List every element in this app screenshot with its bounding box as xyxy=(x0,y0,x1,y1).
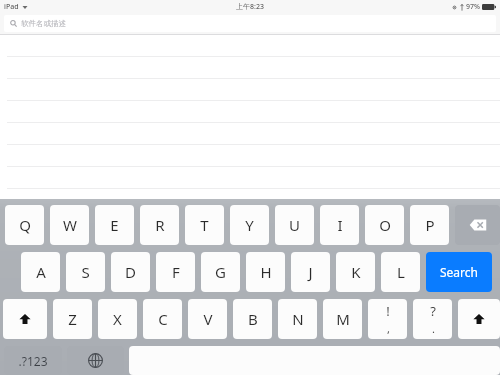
button[interactable]: J xyxy=(291,252,330,292)
button[interactable]: L xyxy=(381,252,420,292)
staticText: .?123 xyxy=(18,353,48,369)
staticText: A xyxy=(36,262,46,282)
staticText: Search xyxy=(440,264,478,280)
staticText: O xyxy=(379,215,391,235)
button[interactable]: Shift xyxy=(3,299,47,339)
button[interactable]: ! xyxy=(368,299,407,339)
button[interactable]: U xyxy=(275,205,314,245)
button[interactable]: S xyxy=(66,252,105,292)
staticText: . xyxy=(432,321,435,336)
staticText: I xyxy=(337,215,343,235)
staticText: F xyxy=(172,262,180,282)
button[interactable]: I xyxy=(320,205,359,245)
button[interactable]: N xyxy=(278,299,317,339)
button[interactable]: Search xyxy=(426,252,492,292)
staticText: L xyxy=(397,262,405,282)
button[interactable]: Q xyxy=(5,205,44,245)
staticText: Q xyxy=(19,215,31,235)
staticText: 软件名或描述 xyxy=(21,19,66,28)
staticText: ! xyxy=(386,302,390,320)
button[interactable]: Switch keyboard xyxy=(67,346,124,375)
staticText: H xyxy=(260,262,272,282)
staticText: P xyxy=(425,215,435,235)
staticText: U xyxy=(289,215,300,235)
button[interactable]: C xyxy=(143,299,182,339)
staticText: V xyxy=(203,309,213,329)
staticText: ? xyxy=(430,302,436,320)
staticText: W xyxy=(63,215,77,235)
button[interactable]: Y xyxy=(230,205,269,245)
button[interactable]: O xyxy=(365,205,404,245)
staticText: R xyxy=(155,215,165,235)
button[interactable]: H xyxy=(246,252,285,292)
staticText: D xyxy=(125,262,136,282)
button[interactable]: P xyxy=(410,205,449,245)
button[interactable]: Z xyxy=(53,299,92,339)
button[interactable]: .?123 xyxy=(4,346,62,375)
button[interactable]: E xyxy=(95,205,134,245)
button[interactable]: A xyxy=(21,252,60,292)
staticText: B xyxy=(248,309,258,329)
button[interactable]: M xyxy=(323,299,362,339)
button[interactable]: F xyxy=(156,252,195,292)
button[interactable]: K xyxy=(336,252,375,292)
button[interactable]: Backspace xyxy=(455,205,500,245)
staticText: C xyxy=(158,309,168,329)
button[interactable]: W xyxy=(50,205,89,245)
button[interactable]: B xyxy=(233,299,272,339)
button[interactable]: ? xyxy=(413,299,452,339)
staticText: X xyxy=(113,309,122,329)
button[interactable]: X xyxy=(98,299,137,339)
button[interactable]: T xyxy=(185,205,224,245)
button[interactable]: R xyxy=(140,205,179,245)
button[interactable]: 软件名或描述 xyxy=(4,15,496,32)
staticText: G xyxy=(215,262,226,282)
button[interactable]: G xyxy=(201,252,240,292)
staticText: Y xyxy=(245,215,254,235)
staticText: M xyxy=(336,309,350,329)
staticText: iPad xyxy=(4,2,19,12)
staticText: 上午8:23 xyxy=(236,2,264,12)
button[interactable]: D xyxy=(111,252,150,292)
staticText: , xyxy=(387,321,390,336)
staticText: N xyxy=(292,309,304,329)
staticText: S xyxy=(81,262,90,282)
staticText: K xyxy=(351,262,361,282)
button[interactable]: V xyxy=(188,299,227,339)
staticText: E xyxy=(110,215,119,235)
staticText: T xyxy=(200,215,209,235)
staticText: J xyxy=(308,262,313,282)
staticText: 97% xyxy=(466,2,480,12)
staticText: Z xyxy=(68,309,77,329)
button[interactable]: Shift xyxy=(458,299,500,339)
